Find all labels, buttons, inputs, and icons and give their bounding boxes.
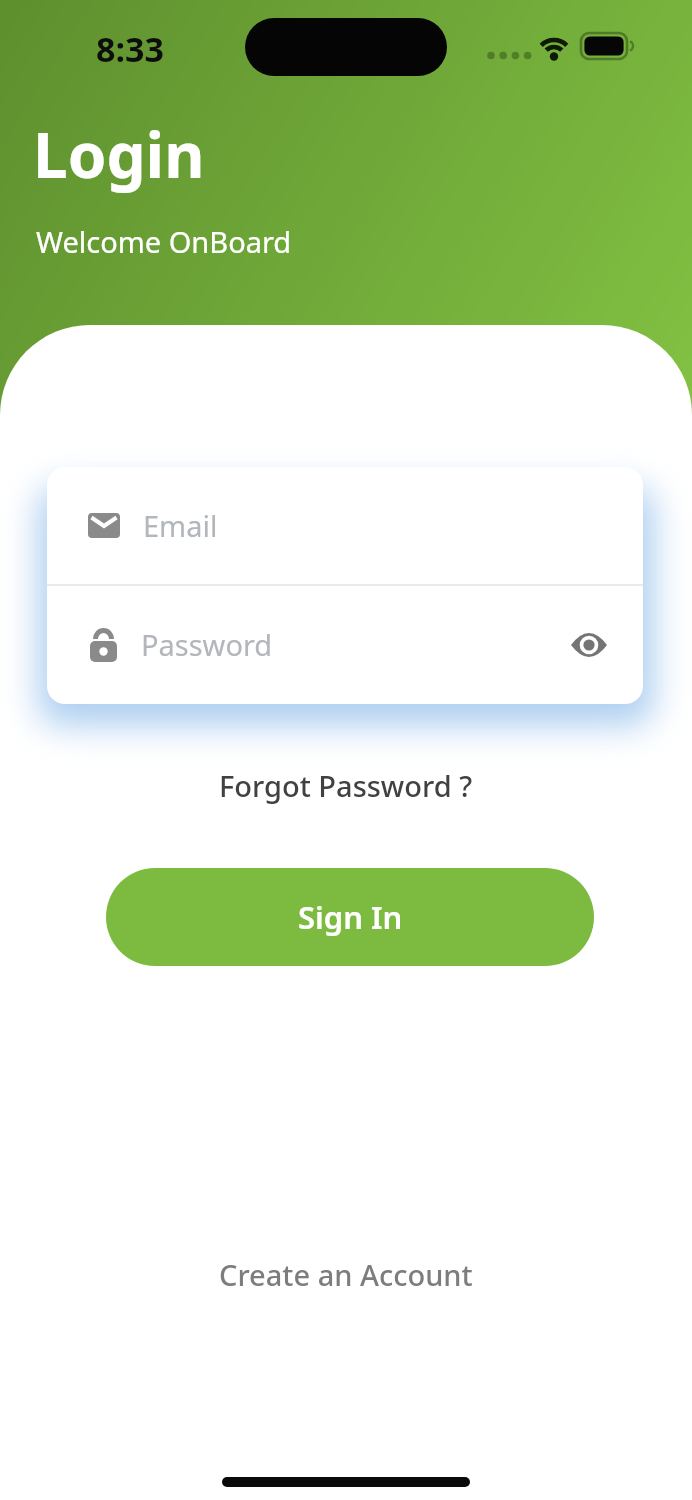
staticText: Email xyxy=(143,506,218,545)
button[interactable]: Password xyxy=(47,586,643,703)
staticText: Sign In xyxy=(298,896,403,938)
button[interactable]: Sign In xyxy=(106,868,594,966)
button[interactable]: Create an Account xyxy=(219,1255,473,1294)
staticText: 8:33 xyxy=(96,26,164,72)
button[interactable] xyxy=(571,633,607,657)
button[interactable]: Email xyxy=(47,467,643,584)
staticText: Password xyxy=(141,625,273,664)
staticText: Login xyxy=(33,112,205,196)
staticText: Welcome OnBoard xyxy=(36,222,292,261)
button[interactable]: Forgot Password ? xyxy=(219,766,473,805)
